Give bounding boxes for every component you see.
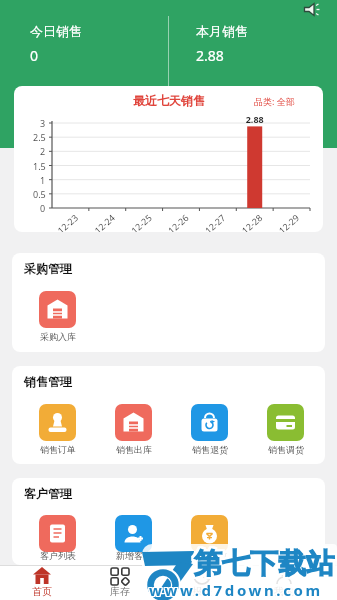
staticText: 客户列表 (40, 550, 76, 561)
staticText: 我的 (274, 585, 294, 598)
staticText: 最近七天销售 (133, 93, 205, 108)
staticText: 销售调货 (268, 444, 304, 455)
staticText: 报表 (192, 585, 212, 598)
staticText: 客户管理 (24, 486, 72, 501)
staticText: 0 (30, 46, 39, 65)
staticText: 采购管理 (24, 261, 72, 276)
staticText: 新增客户 (116, 550, 152, 561)
staticText: 销售出库 (116, 444, 152, 455)
staticText: 品类: 全部 (254, 95, 295, 107)
staticText: 采购入库 (40, 331, 76, 342)
staticText: 销售退货 (192, 444, 228, 455)
staticText: 今日销售 (30, 23, 82, 39)
staticText: 2.88 (196, 46, 224, 65)
staticText: 库存 (110, 585, 130, 598)
staticText: 本月销售 (196, 23, 248, 39)
staticText: 销售管理 (24, 374, 72, 389)
staticText: 客户应收 (192, 550, 228, 561)
staticText: 销售订单 (40, 444, 76, 455)
staticText: 首页 (32, 585, 52, 598)
